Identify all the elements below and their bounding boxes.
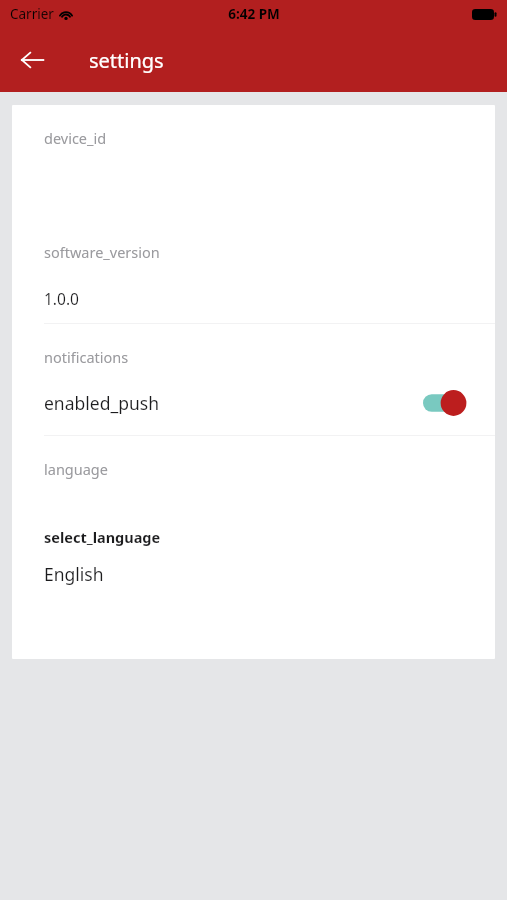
staticText: enabled_push <box>44 391 159 415</box>
button[interactable]: select_language <box>12 527 495 586</box>
staticText: English <box>44 562 104 586</box>
button[interactable]: Back <box>10 38 54 82</box>
staticText: select_language <box>44 527 161 547</box>
button[interactable]: enabled_push <box>12 386 495 420</box>
staticText: language <box>44 459 108 479</box>
button[interactable]: Toggle push notifications <box>423 389 467 417</box>
staticText: Carrier <box>10 5 54 23</box>
staticText: notifications <box>44 347 129 367</box>
staticText: device_id <box>44 128 107 148</box>
staticText: 6:42 PM <box>228 5 280 23</box>
staticText: settings <box>89 47 164 74</box>
staticText: 1.0.0 <box>44 288 79 309</box>
staticText: software_version <box>44 242 160 262</box>
